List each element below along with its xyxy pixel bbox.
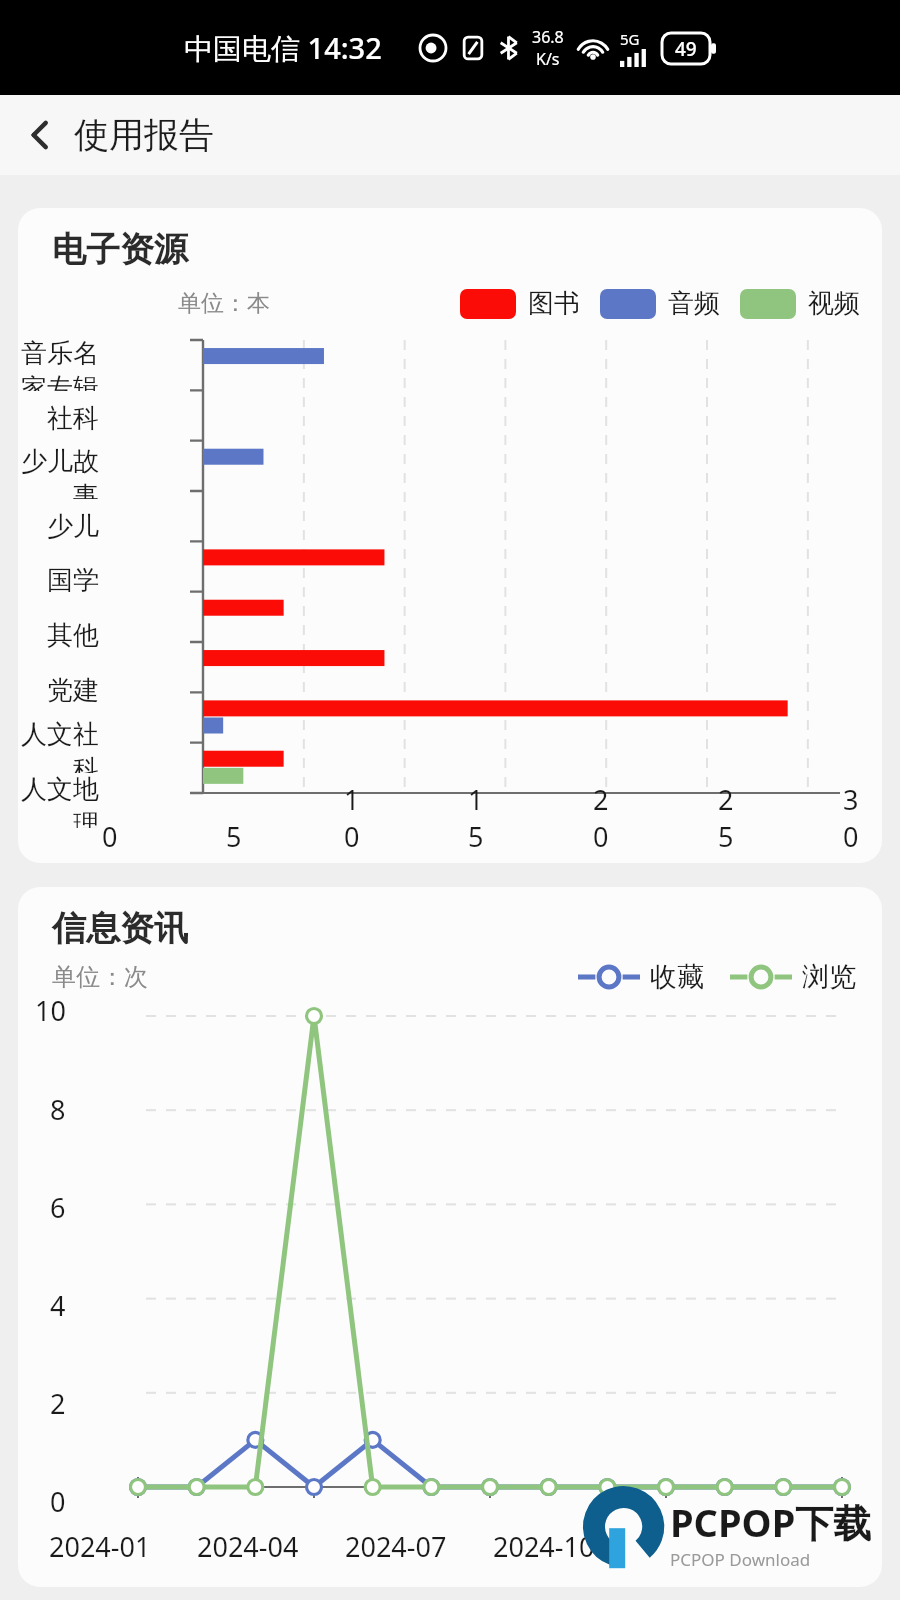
staticText: 国学	[18, 564, 99, 597]
staticText: 30	[843, 781, 871, 855]
staticText: 2024-04	[197, 1528, 299, 1565]
staticText: 使用报告	[74, 113, 214, 157]
staticText: 20	[593, 781, 621, 855]
staticText: 人文社科	[18, 718, 99, 773]
staticText: 5G	[620, 29, 640, 49]
staticText: 收藏	[650, 960, 704, 994]
button[interactable]: 电子资源	[18, 208, 882, 863]
staticText: 视频	[808, 287, 860, 320]
staticText: 社科	[18, 402, 99, 435]
staticText: 2024-01	[49, 1528, 151, 1565]
staticText: 10	[344, 781, 372, 855]
staticText: 音乐名家专辑	[18, 337, 99, 391]
staticText: 人文地理	[18, 773, 99, 828]
staticText: 49	[675, 36, 697, 62]
staticText: 2024-10	[493, 1528, 595, 1565]
staticText: 其他	[18, 619, 99, 652]
staticText: 单位：本	[178, 289, 270, 318]
staticText: 少儿	[18, 510, 99, 543]
button[interactable]: 信息资讯	[18, 887, 882, 1587]
staticText: PCPOP Download	[670, 1548, 811, 1571]
staticText: 8	[50, 1091, 66, 1128]
staticText: 电子资源	[52, 228, 188, 271]
staticText: 5	[226, 818, 242, 855]
staticText: 中国电信 14:32	[184, 28, 382, 68]
staticText: 浏览	[802, 960, 856, 994]
staticText: 25	[718, 781, 746, 855]
staticText: 15	[468, 781, 496, 855]
button[interactable]: Back	[16, 111, 64, 159]
staticText: 6	[50, 1189, 66, 1226]
staticText: 少儿故事	[18, 445, 99, 499]
staticText: 信息资讯	[52, 907, 188, 950]
staticText: 2024-07	[345, 1528, 447, 1565]
staticText: 36.8	[532, 26, 564, 48]
staticText: 党建	[18, 674, 99, 707]
staticText: 0	[50, 1483, 66, 1520]
staticText: 单位：次	[52, 962, 148, 992]
staticText: 0	[102, 818, 118, 855]
staticText: K/s	[536, 48, 560, 70]
staticText: 音频	[668, 287, 720, 320]
staticText: PCPOP下载	[670, 1496, 872, 1548]
staticText: 10	[35, 992, 66, 1029]
staticText: 4	[50, 1287, 66, 1324]
staticText: 图书	[528, 287, 580, 320]
staticText: 2	[50, 1385, 66, 1422]
